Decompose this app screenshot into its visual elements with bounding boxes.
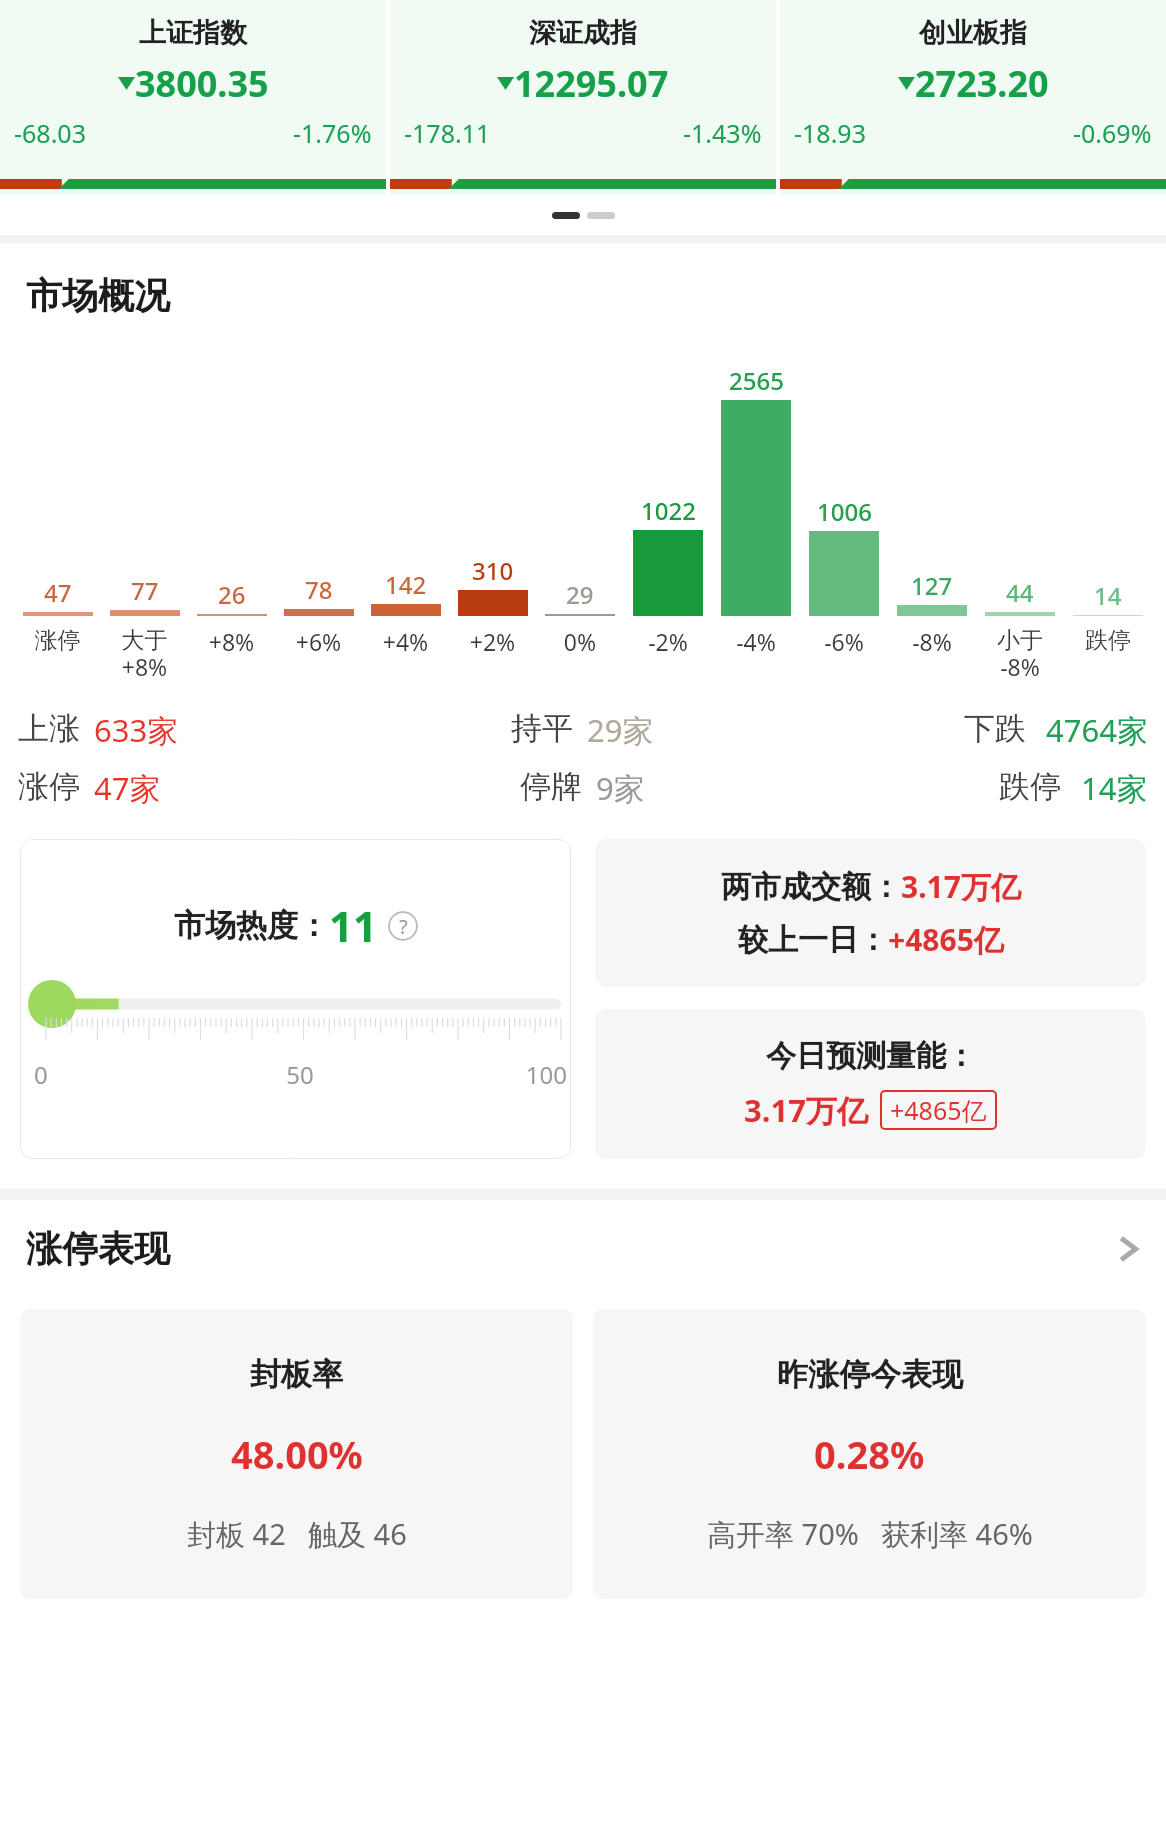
staticText: 26 — [218, 578, 246, 611]
staticText: 77 — [131, 574, 159, 607]
staticText: 较上一日： — [738, 921, 888, 959]
button[interactable]: 说明 — [388, 911, 418, 941]
staticText: 47 — [44, 576, 72, 609]
staticText: 14家 — [1081, 767, 1148, 809]
staticText: +4865亿 — [888, 919, 1004, 960]
button[interactable]: 今日预测量能： — [595, 1009, 1146, 1159]
staticText: 0% — [536, 626, 624, 657]
staticText: 78 — [305, 573, 333, 606]
staticText: 涨停表现 — [26, 1226, 170, 1271]
staticText: 48.00% — [231, 1428, 363, 1480]
staticText: -6% — [800, 626, 888, 657]
staticText: 100 — [389, 1058, 567, 1091]
staticText: 市场热度： — [174, 906, 329, 945]
staticText: 142 — [385, 568, 427, 601]
staticText: 市场概况 — [26, 273, 170, 318]
staticText: -1.76% — [293, 116, 372, 150]
staticText: +2% — [449, 626, 536, 657]
staticText: 涨停 — [14, 626, 101, 655]
button[interactable]: 上证指数 — [0, 0, 386, 195]
staticText: 2565 — [729, 364, 784, 397]
button[interactable]: 涨停表现 — [26, 1226, 1140, 1271]
staticText: 封板率 — [250, 1355, 343, 1394]
staticText: 高开率 70% — [707, 1514, 859, 1554]
staticText: +4865亿 — [890, 1093, 987, 1127]
staticText: 44 — [1006, 576, 1034, 609]
button[interactable]: 深证成指 — [390, 0, 776, 195]
button[interactable]: 昨涨停今表现 — [593, 1309, 1146, 1599]
staticText: -4% — [712, 626, 800, 657]
staticText: 昨涨停今表现 — [777, 1355, 963, 1394]
staticText: 获利率 46% — [881, 1514, 1033, 1554]
staticText: 0.28% — [814, 1428, 925, 1480]
button[interactable]: 创业板指 — [780, 0, 1166, 195]
staticText: -8% — [888, 626, 976, 657]
staticText: ? — [399, 913, 408, 940]
staticText: 跌停 — [1064, 626, 1152, 655]
other: 更多 — [1118, 1231, 1140, 1267]
staticText: 47家 — [94, 767, 161, 809]
staticText: 0 — [34, 1058, 211, 1091]
staticText: 1006 — [817, 495, 872, 528]
staticText: 11 — [329, 897, 378, 954]
staticText: +6% — [275, 626, 362, 657]
staticText: -0.69% — [1073, 116, 1152, 150]
staticText: 停牌 — [520, 767, 582, 806]
staticText: 3800.35 — [135, 59, 269, 108]
staticText: 9家 — [596, 767, 645, 809]
staticText: 小于 -8% — [976, 626, 1064, 683]
staticText: 4764家 — [1046, 709, 1148, 751]
staticText: 14 — [1094, 579, 1122, 612]
staticText: 持平 — [511, 709, 573, 748]
staticText: 封板 42 — [187, 1514, 286, 1554]
staticText: -68.03 — [14, 116, 86, 150]
button[interactable]: 封板率 — [20, 1309, 573, 1599]
staticText: 1022 — [641, 494, 696, 527]
staticText: 3.17万亿 — [901, 866, 1021, 907]
staticText: 633家 — [94, 709, 179, 751]
staticText: 上证指数 — [139, 16, 247, 50]
staticText: -1.43% — [683, 116, 762, 150]
staticText: 3.17万亿 — [744, 1089, 868, 1131]
staticText: 127 — [911, 569, 953, 602]
staticText: -2% — [624, 626, 712, 657]
staticText: +8% — [188, 626, 275, 657]
staticText: 跌停 — [999, 767, 1061, 806]
button[interactable]: 市场热度： — [20, 839, 571, 1159]
staticText: 大于 +8% — [101, 626, 188, 683]
staticText: -18.93 — [794, 116, 866, 150]
staticText: 2723.20 — [915, 59, 1049, 108]
staticText: -178.11 — [404, 116, 491, 150]
staticText: 上涨 — [18, 709, 80, 748]
staticText: 29家 — [587, 709, 654, 751]
staticText: 创业板指 — [919, 16, 1027, 50]
staticText: 深证成指 — [529, 16, 637, 50]
staticText: 今日预测量能： — [766, 1037, 976, 1075]
staticText: +4% — [362, 626, 449, 657]
button[interactable]: 两市成交额： — [595, 839, 1146, 987]
staticText: 50 — [211, 1058, 389, 1091]
staticText: 两市成交额： — [721, 868, 901, 906]
staticText: 涨停 — [18, 767, 80, 806]
staticText: 12295.07 — [514, 59, 669, 108]
staticText: 触及 46 — [308, 1514, 407, 1554]
staticText: 29 — [566, 578, 594, 611]
staticText: 310 — [472, 554, 514, 587]
staticText: 下跌 — [964, 709, 1026, 748]
